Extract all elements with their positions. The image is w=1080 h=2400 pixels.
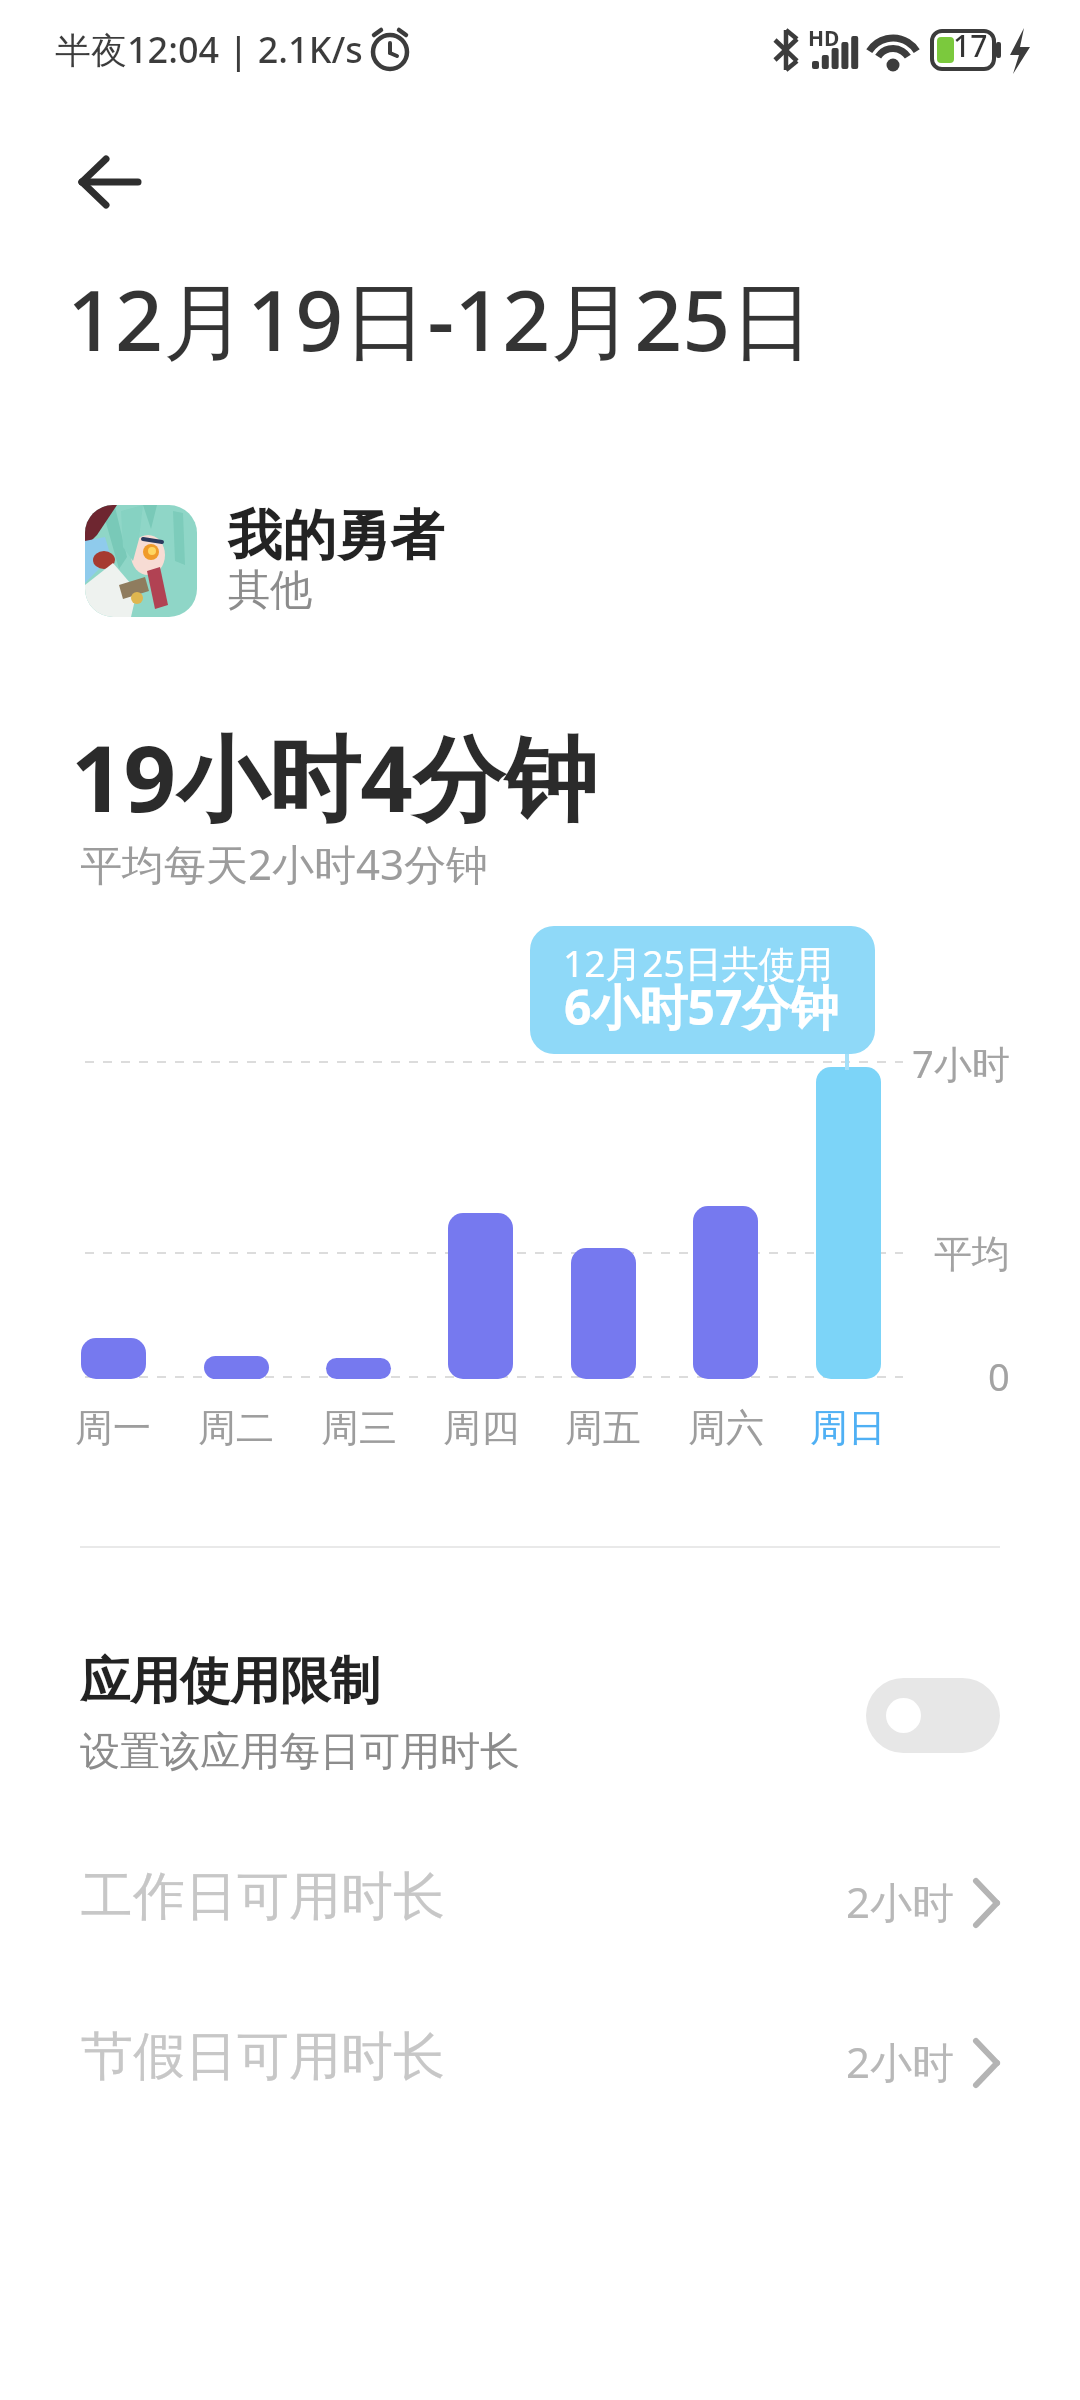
staticText: 12月25日共使用: [563, 937, 833, 988]
staticText: 其他: [228, 564, 312, 617]
staticText: 设置该应用每日可用时长: [80, 1726, 520, 1776]
staticText: 0: [988, 1350, 1010, 1402]
staticText: 周三: [321, 1404, 397, 1452]
staticText: 周日: [810, 1404, 886, 1452]
button[interactable]: 工作日可用时长: [60, 1848, 1020, 1958]
button[interactable]: [60, 140, 160, 225]
staticText: 7小时: [912, 1037, 1010, 1089]
staticText: 平均每天2小时43分钟: [80, 835, 489, 892]
staticText: HD: [808, 24, 840, 53]
staticText: 周一: [75, 1404, 151, 1452]
staticText: 2小时: [846, 1873, 955, 1930]
staticText: 我的勇者: [228, 502, 444, 570]
staticText: 2小时: [846, 2033, 955, 2090]
button[interactable]: [866, 1678, 1000, 1753]
staticText: 19小时4分钟: [71, 714, 597, 840]
staticText: 6小时57分钟: [564, 974, 839, 1040]
button[interactable]: 节假日可用时长: [60, 2008, 1020, 2118]
staticText: 12月19日-12月25日: [67, 261, 815, 376]
staticText: 周五: [565, 1404, 641, 1452]
staticText: 平均: [934, 1230, 1010, 1278]
staticText: 周六: [688, 1404, 764, 1452]
staticText: 工作日可用时长: [81, 1864, 445, 1930]
staticText: 17: [953, 25, 988, 66]
button[interactable]: 我的勇者: [85, 505, 585, 617]
staticText: 应用使用限制: [80, 1650, 380, 1713]
staticText: 周二: [198, 1404, 274, 1452]
staticText: 半夜12:04 | 2.1K/s: [55, 25, 363, 74]
staticText: 周四: [443, 1404, 519, 1452]
staticText: 节假日可用时长: [81, 2024, 445, 2090]
